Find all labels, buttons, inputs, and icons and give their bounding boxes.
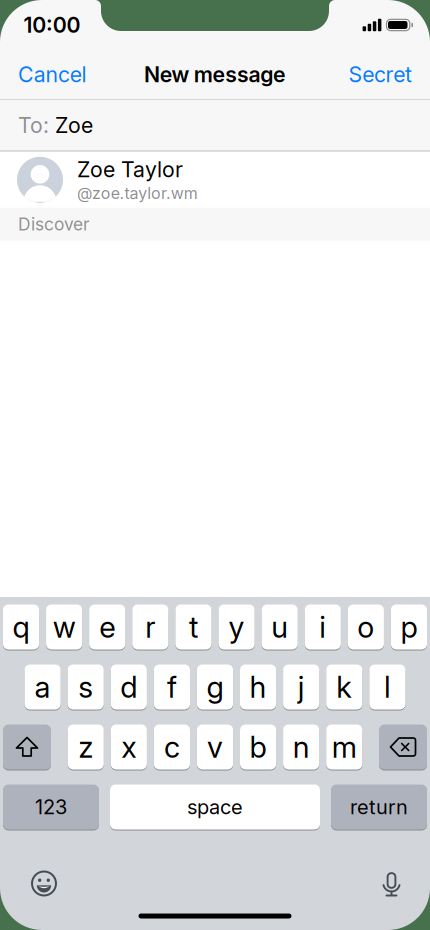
button[interactable]: l (369, 664, 405, 709)
staticText: Zoe Taylor (77, 157, 183, 182)
button[interactable]: q (3, 604, 39, 649)
button[interactable]: h (240, 664, 276, 709)
button[interactable]: p (391, 604, 427, 649)
staticText: Cancel (18, 62, 86, 87)
button[interactable]: Cancel (0, 62, 86, 87)
button[interactable]: o (348, 604, 384, 649)
button[interactable]: u (262, 604, 298, 649)
button[interactable]: Dictation (382, 870, 401, 896)
button[interactable]: Delete (379, 724, 427, 769)
staticText: h (250, 670, 267, 704)
button[interactable]: i (305, 604, 341, 649)
staticText: @zoe.taylor.wm (77, 184, 198, 203)
staticText: Discover (18, 214, 90, 234)
staticText: e (99, 610, 115, 644)
staticText: a (35, 670, 51, 704)
button[interactable]: t (175, 604, 212, 649)
button[interactable]: y (218, 604, 255, 649)
button[interactable]: x (111, 724, 147, 769)
staticText: f (167, 670, 177, 704)
staticText: i (319, 610, 326, 644)
staticText: k (336, 670, 352, 704)
button[interactable]: Zoe Taylor (0, 152, 430, 208)
button[interactable]: f (154, 664, 190, 709)
button[interactable]: s (68, 664, 104, 709)
staticText: g (206, 670, 223, 704)
button[interactable]: Secret (348, 62, 430, 87)
button[interactable]: v (197, 724, 233, 769)
button[interactable]: Emoji (31, 870, 57, 896)
staticText: j (298, 670, 305, 704)
staticText: c (164, 730, 180, 764)
button[interactable]: b (240, 724, 276, 769)
staticText: m (332, 730, 357, 764)
staticText: z (78, 730, 93, 764)
button[interactable]: 123 (3, 784, 99, 829)
staticText: Zoe (55, 113, 93, 138)
staticText: p (400, 610, 417, 644)
staticText: space (187, 795, 243, 819)
staticText: 10:00 (23, 12, 81, 38)
staticText: d (120, 670, 137, 704)
button[interactable]: k (326, 664, 362, 709)
staticText: x (121, 730, 136, 764)
staticText: t (189, 610, 198, 644)
button[interactable]: Shift (3, 724, 51, 769)
staticText: s (78, 670, 93, 704)
staticText: return (350, 795, 408, 819)
staticText: To: (18, 113, 49, 138)
staticText: r (145, 610, 155, 644)
button[interactable]: z (68, 724, 104, 769)
staticText: Secret (348, 62, 412, 87)
button[interactable]: w (46, 604, 82, 649)
staticText: y (229, 610, 245, 644)
staticText: l (384, 670, 391, 704)
button[interactable]: return (331, 784, 427, 829)
button[interactable]: d (111, 664, 147, 709)
staticText: w (53, 610, 76, 644)
button[interactable]: e (89, 604, 125, 649)
button[interactable]: g (197, 664, 233, 709)
button[interactable]: a (24, 664, 61, 709)
button[interactable]: space (110, 784, 320, 829)
button[interactable]: n (283, 724, 319, 769)
staticText: n (293, 730, 310, 764)
button[interactable]: r (132, 604, 168, 649)
staticText: q (13, 610, 30, 644)
staticText: 123 (35, 795, 67, 819)
button[interactable]: j (283, 664, 319, 709)
staticText: v (207, 730, 223, 764)
button[interactable]: c (154, 724, 190, 769)
staticText: o (357, 610, 374, 644)
button[interactable]: m (326, 724, 362, 769)
staticText: New message (144, 62, 286, 87)
staticText: b (250, 730, 267, 764)
staticText: u (271, 610, 288, 644)
